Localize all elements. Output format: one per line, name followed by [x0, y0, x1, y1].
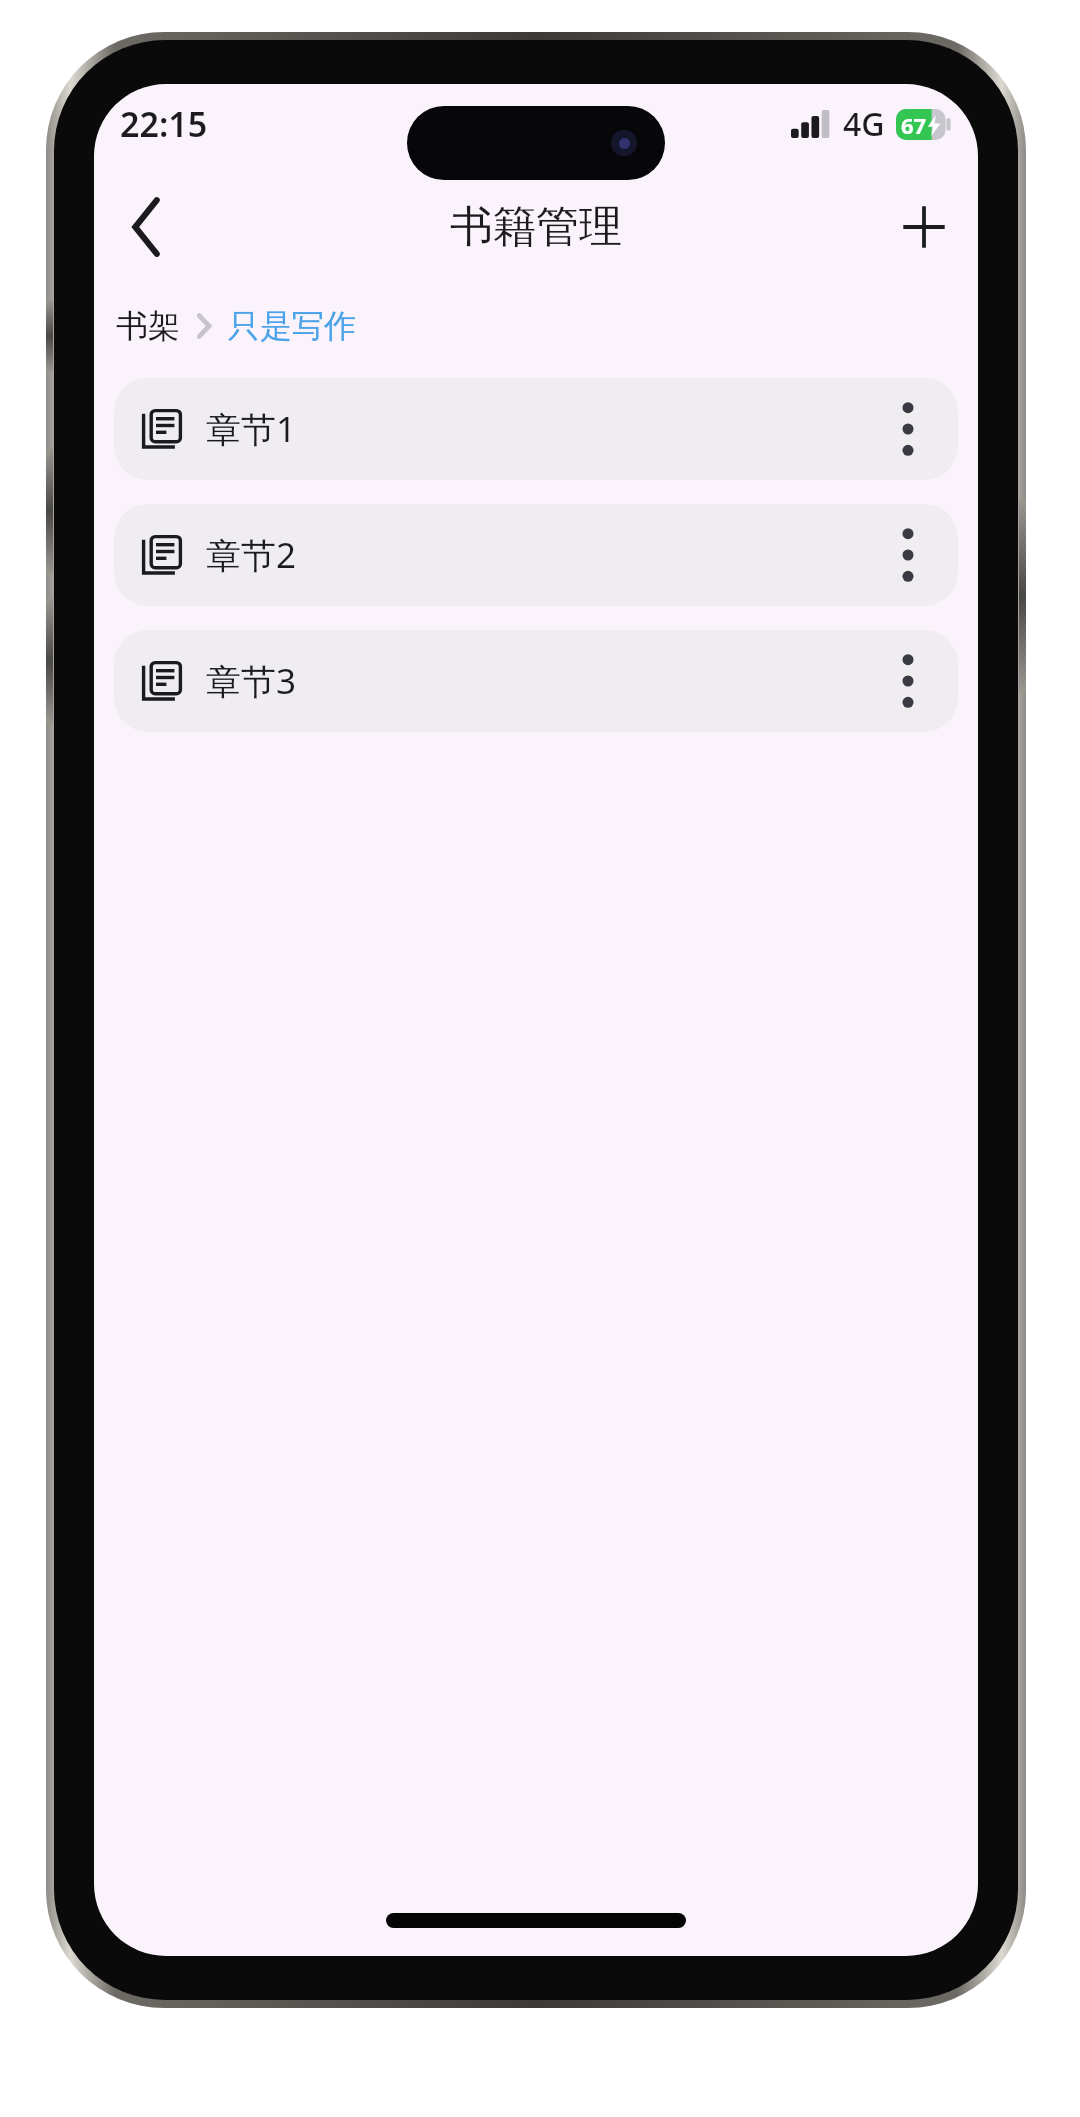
- button[interactable]: 新增: [880, 183, 968, 271]
- button[interactable]: 只是写作: [228, 306, 356, 346]
- staticText: 22:15: [120, 101, 208, 147]
- button[interactable]: 书架: [116, 306, 180, 346]
- staticText: 章节1: [206, 405, 297, 453]
- staticText: 书籍管理: [450, 200, 622, 254]
- staticText: 只是写作: [228, 306, 356, 346]
- button[interactable]: 更多选项: [880, 641, 936, 721]
- button[interactable]: 返回: [102, 183, 190, 271]
- button[interactable]: 更多选项: [880, 515, 936, 595]
- staticText: 67: [901, 110, 927, 140]
- staticText: 章节2: [206, 531, 297, 579]
- staticText: 章节3: [206, 657, 297, 705]
- button[interactable]: 章节3: [114, 630, 958, 732]
- staticText: 4G: [843, 102, 885, 146]
- button[interactable]: 更多选项: [880, 389, 936, 469]
- button[interactable]: 章节2: [114, 504, 958, 606]
- staticText: 书架: [116, 306, 180, 346]
- button[interactable]: 章节1: [114, 378, 958, 480]
